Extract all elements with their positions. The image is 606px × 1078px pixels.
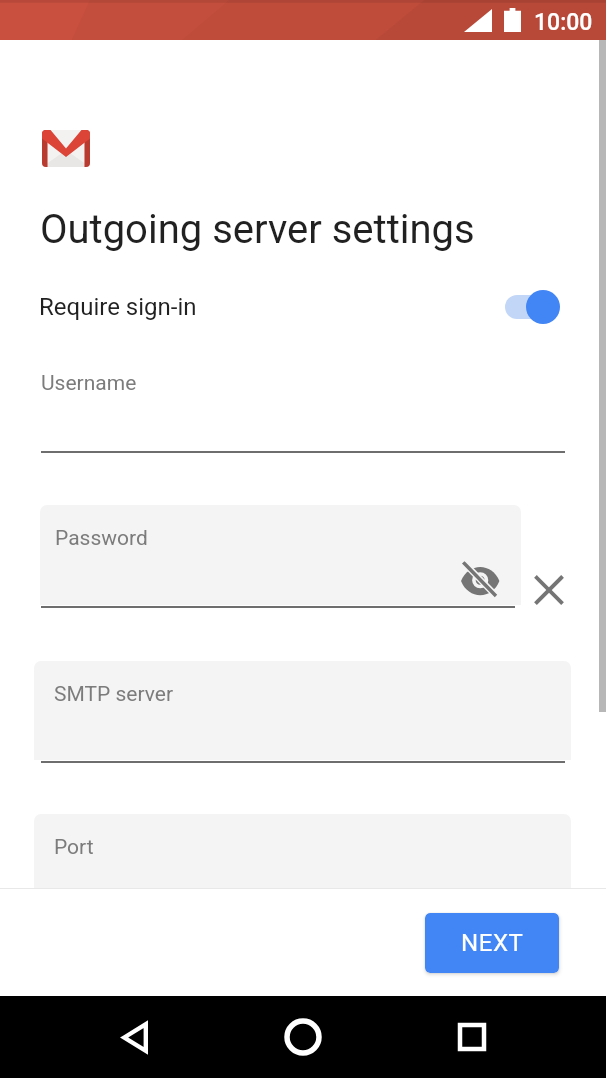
- staticText: Password: [55, 526, 148, 551]
- staticText: NEXT: [461, 929, 524, 957]
- staticText: Port: [54, 835, 94, 860]
- staticText: 10:00: [534, 9, 593, 36]
- button[interactable]: Show password: [461, 559, 501, 599]
- staticText: Username: [41, 371, 137, 396]
- button[interactable]: NEXT: [425, 913, 559, 973]
- button[interactable]: SMTP server: [34, 661, 571, 760]
- staticText: Outgoing server settings: [40, 206, 475, 253]
- button[interactable]: Port: [34, 814, 571, 888]
- button[interactable]: Require sign-in: [0, 283, 606, 331]
- button[interactable]: Home: [271, 1005, 335, 1069]
- button[interactable]: Back: [103, 1005, 167, 1069]
- staticText: Require sign-in: [39, 293, 197, 321]
- button[interactable]: Clear: [526, 567, 572, 613]
- staticText: SMTP server: [54, 682, 174, 707]
- button[interactable]: Recents: [440, 1005, 504, 1069]
- button[interactable]: Password: [40, 505, 521, 605]
